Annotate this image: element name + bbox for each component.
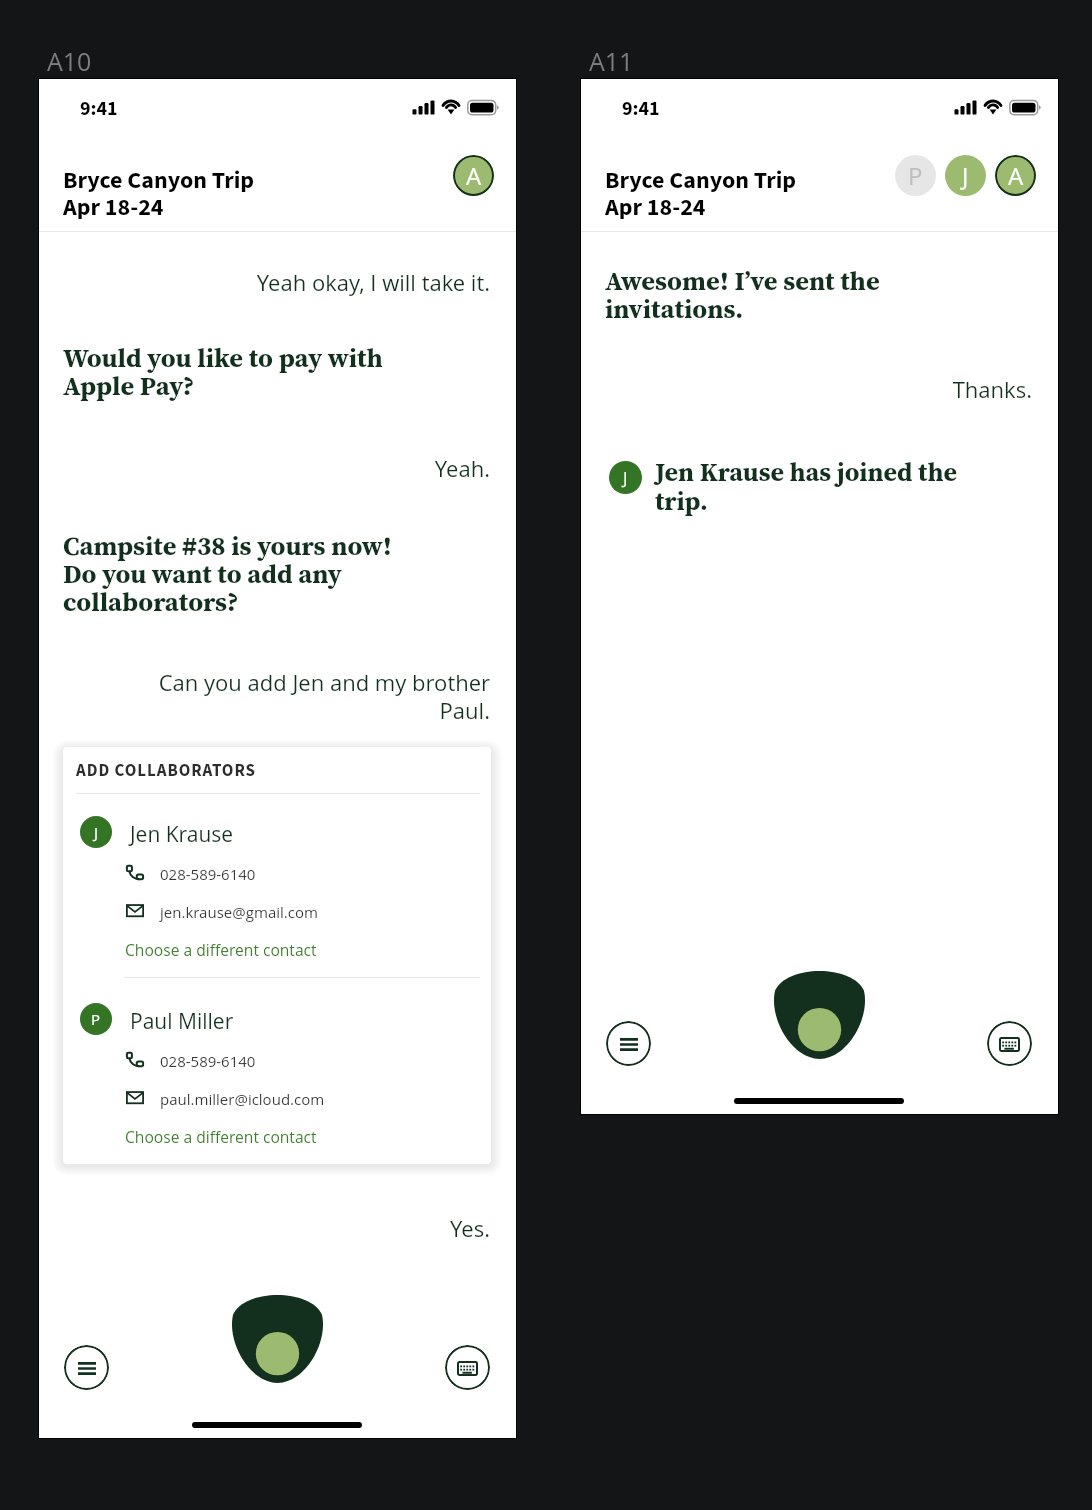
staticText: Apr 18-24 [63, 190, 164, 224]
staticText: Would you like to pay with Apple Pay? [63, 340, 383, 404]
staticText: A [466, 159, 482, 192]
staticText: 028-589-6140 [160, 864, 256, 884]
staticText: Yeah. [138, 453, 490, 483]
staticText: Awesome! I’ve sent the invitations. [605, 263, 880, 327]
staticText: A10 [47, 44, 92, 78]
staticText: Thanks. [680, 374, 1032, 404]
staticText: jen.krause@gmail.com [160, 902, 318, 922]
staticText: A11 [589, 44, 634, 78]
staticText: 9:41 [622, 95, 660, 123]
staticText: A [1008, 159, 1024, 192]
staticText: Can you add Jen and my brother Paul. [138, 667, 490, 726]
staticText: Apr 18-24 [605, 190, 706, 224]
button[interactable]: Choose a different contact [125, 943, 317, 964]
staticText: 9:41 [80, 95, 118, 123]
staticText: P [91, 1009, 101, 1029]
button[interactable]: Keyboard [445, 1345, 490, 1390]
button[interactable]: Jen Krause [130, 819, 234, 848]
staticText: P [908, 159, 923, 192]
staticText: Campsite #38 is yours now! Do you want t… [63, 528, 392, 620]
button[interactable]: Paul Miller [130, 1006, 234, 1035]
staticText: J [962, 159, 969, 192]
staticText: Jen Krause has joined the trip. [655, 454, 957, 518]
button[interactable]: Keyboard [987, 1021, 1032, 1066]
staticText: Bryce Canyon Trip [605, 163, 797, 197]
staticText: Yes. [138, 1213, 490, 1243]
staticText: Choose a different contact [125, 939, 317, 960]
staticText: J [623, 466, 628, 489]
staticText: Choose a different contact [125, 1126, 317, 1147]
staticText: Bryce Canyon Trip [63, 163, 255, 197]
staticText: Yeah okay, I will take it. [138, 267, 490, 297]
staticText: J [94, 822, 99, 842]
staticText: Jen Krause [130, 820, 234, 849]
button[interactable]: Menu [64, 1345, 109, 1390]
staticText: 028-589-6140 [160, 1051, 256, 1071]
button[interactable]: Menu [606, 1021, 651, 1066]
staticText: paul.miller@icloud.com [160, 1089, 325, 1109]
button[interactable]: Choose a different contact [125, 1130, 317, 1151]
staticText: ADD COLLABORATORS [76, 759, 256, 783]
staticText: Paul Miller [130, 1007, 234, 1036]
